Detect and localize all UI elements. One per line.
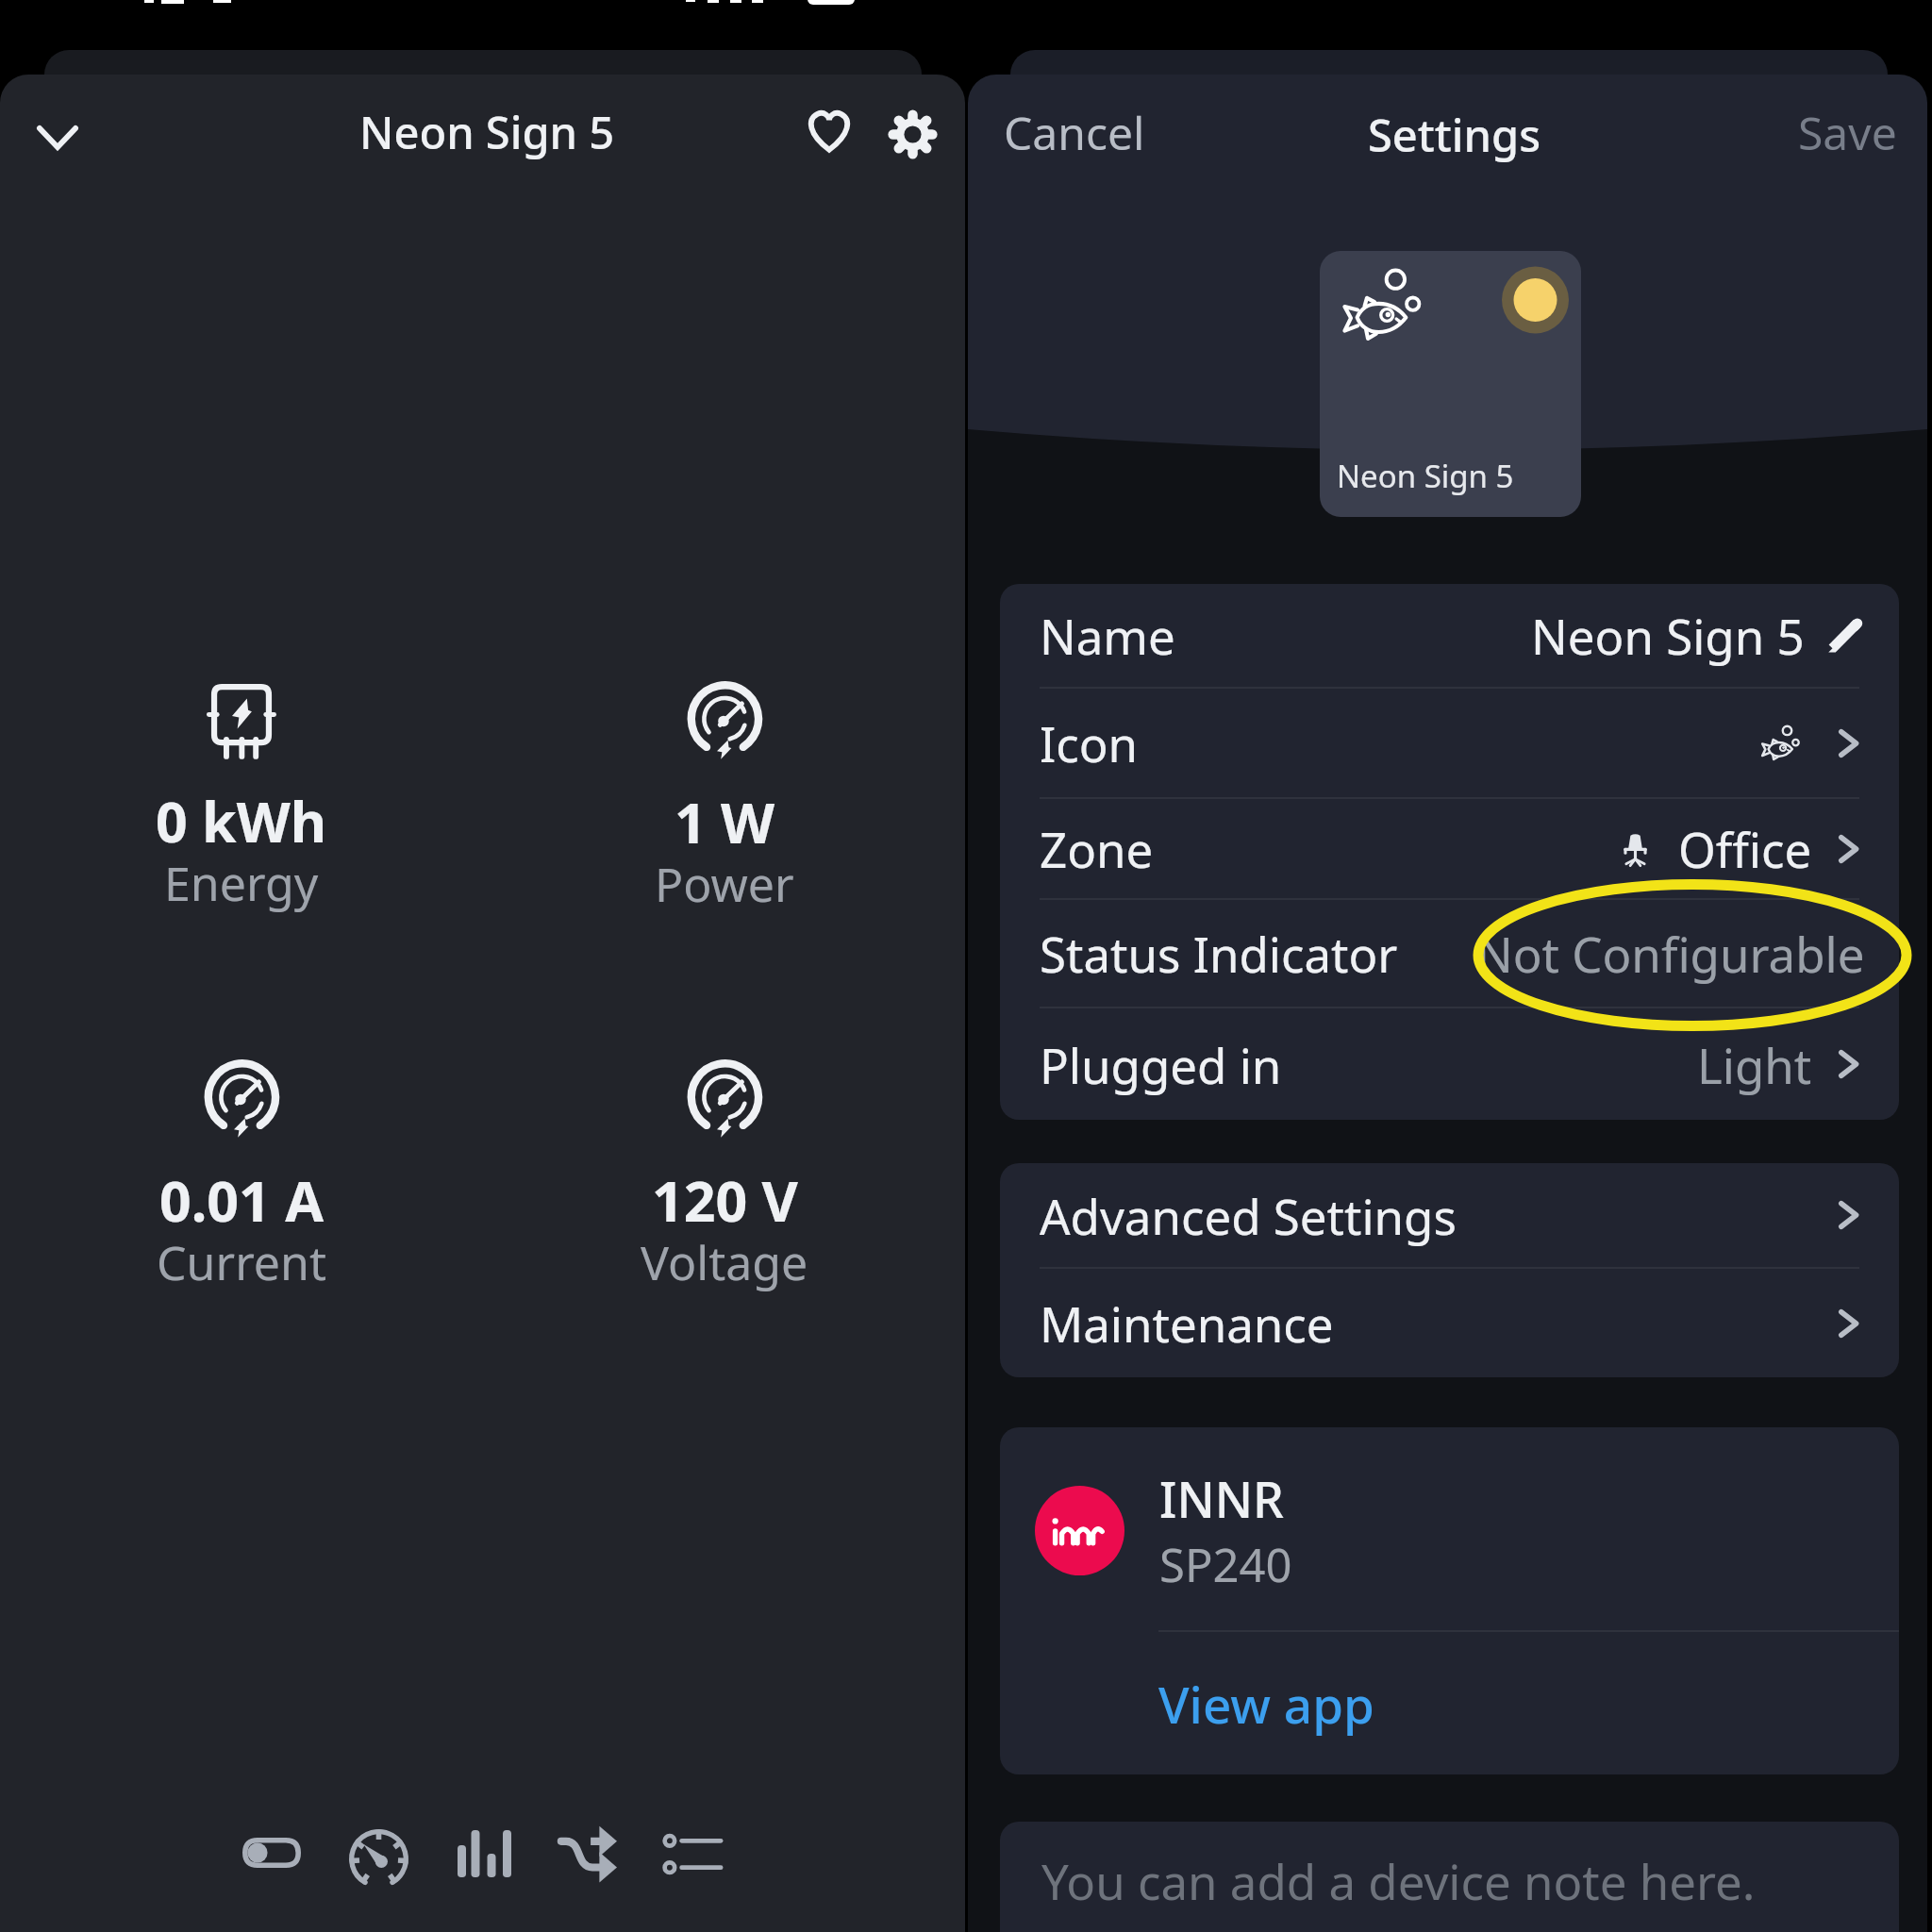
- button[interactable]: Device preview: [1320, 251, 1581, 517]
- button[interactable]: Maintenance: [1000, 1269, 1899, 1377]
- staticText: Name: [1040, 603, 1175, 668]
- staticText: Not Configurable: [1476, 921, 1865, 986]
- staticText: You can add a device note here.: [1041, 1848, 1756, 1913]
- button[interactable]: Zone: [1000, 799, 1899, 898]
- button[interactable]: Favourite: [789, 90, 870, 171]
- staticText: Plugged in: [1040, 1032, 1282, 1097]
- staticText: Save: [1798, 102, 1897, 163]
- staticText: Cancel: [1004, 102, 1145, 163]
- staticText: Zone: [1040, 816, 1154, 881]
- staticText: Status Indicator: [1040, 921, 1398, 986]
- button[interactable]: Name: [1000, 584, 1899, 687]
- staticText: 0.01 A: [159, 1162, 324, 1238]
- staticText: 120 V: [652, 1162, 798, 1238]
- staticText: Voltage: [641, 1230, 808, 1294]
- button[interactable]: Advanced Settings: [1000, 1163, 1899, 1267]
- button[interactable]: Save: [1775, 79, 1920, 186]
- staticText: View app: [1158, 1670, 1374, 1738]
- staticText: Advanced Settings: [1040, 1183, 1457, 1248]
- button[interactable]: Statistics: [437, 1807, 531, 1901]
- button[interactable]: View app: [1000, 1632, 1899, 1774]
- button[interactable]: Cancel: [981, 79, 1168, 186]
- button[interactable]: Settings: [872, 93, 953, 175]
- staticText: Settings: [1368, 105, 1541, 165]
- button[interactable]: Routines: [541, 1804, 635, 1898]
- staticText: Maintenance: [1040, 1291, 1334, 1356]
- staticText: Office: [1678, 816, 1812, 881]
- staticText: Neon Sign 5: [1337, 455, 1514, 497]
- staticText: SP240: [1159, 1533, 1292, 1596]
- button[interactable]: Status Indicator: [1000, 900, 1899, 1007]
- staticText: Light: [1697, 1032, 1812, 1097]
- button[interactable]: Plugged in: [1000, 1008, 1899, 1120]
- button[interactable]: Device note: [1000, 1822, 1899, 1932]
- staticText: Current: [157, 1230, 326, 1294]
- staticText: Icon: [1040, 710, 1139, 775]
- button[interactable]: Icon: [1000, 689, 1899, 797]
- button[interactable]: Collapse: [17, 97, 98, 178]
- staticText: Neon Sign 5: [1531, 603, 1805, 668]
- staticText: INNR: [1159, 1465, 1284, 1532]
- staticText: Power: [655, 852, 794, 916]
- staticText: 0 kWh: [156, 783, 327, 858]
- staticText: Neon Sign 5: [359, 102, 615, 162]
- button[interactable]: Toggle power: [225, 1806, 319, 1900]
- staticText: 1 W: [675, 784, 775, 859]
- button[interactable]: Meter: [331, 1811, 425, 1906]
- button[interactable]: Options: [646, 1807, 741, 1901]
- staticText: Energy: [164, 851, 319, 915]
